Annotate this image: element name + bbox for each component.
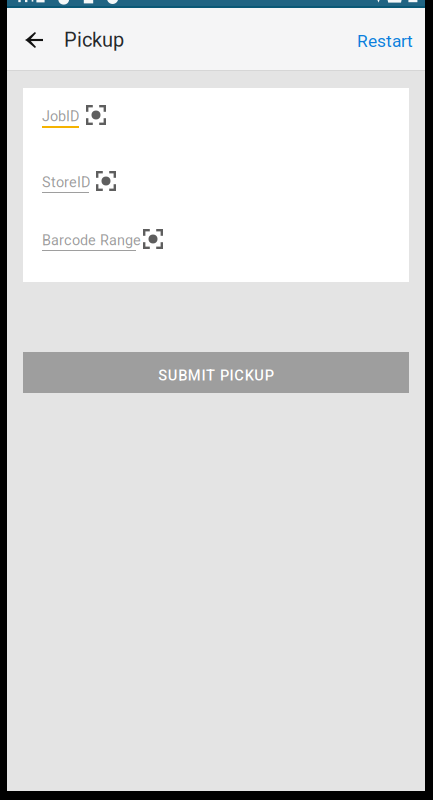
button[interactable]: Restart [354,8,416,70]
staticText: Barcode Range [42,232,141,249]
staticText: StoreID [42,174,90,191]
button[interactable]: Barcode Range [42,234,272,260]
staticText: Pickup [64,28,124,52]
button[interactable]: SUBMIT PICKUP [23,352,409,393]
button[interactable]: Back [18,8,50,70]
staticText: SUBMIT PICKUP [158,367,274,384]
button[interactable]: JobID [42,110,272,136]
staticText: JobID [42,108,79,125]
button[interactable]: StoreID [42,176,272,202]
staticText: Restart [357,31,413,51]
